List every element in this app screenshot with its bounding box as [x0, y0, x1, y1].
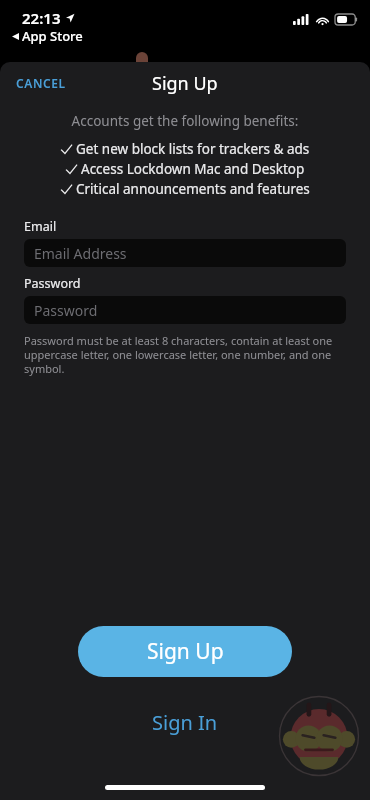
button[interactable]: CANCEL — [8, 69, 74, 97]
button[interactable]: Sign Up — [78, 626, 292, 677]
button[interactable]: Password field — [24, 296, 346, 324]
staticText: Access Lockdown Mac and Desktop — [81, 160, 305, 178]
staticText: Email Address — [34, 244, 127, 263]
staticText: CANCEL — [16, 75, 66, 91]
staticText: Sign Up — [147, 637, 224, 666]
staticText: Sign In — [152, 709, 218, 736]
staticText: 22:13 — [22, 8, 61, 28]
staticText: Password — [34, 301, 98, 320]
staticText: Email — [24, 218, 57, 235]
staticText: App Store — [22, 27, 83, 45]
staticText: Password must be at least 8 characters, … — [24, 333, 346, 376]
button[interactable]: Email Address field — [24, 239, 346, 267]
staticText: Sign Up — [152, 71, 218, 96]
button[interactable]: Sign In — [130, 702, 240, 743]
staticText: Password — [24, 275, 81, 292]
staticText: Get new block lists for trackers & ads — [76, 140, 310, 158]
staticText: Critical announcements and features — [76, 180, 310, 198]
staticText: Accounts get the following benefits: — [0, 112, 370, 130]
